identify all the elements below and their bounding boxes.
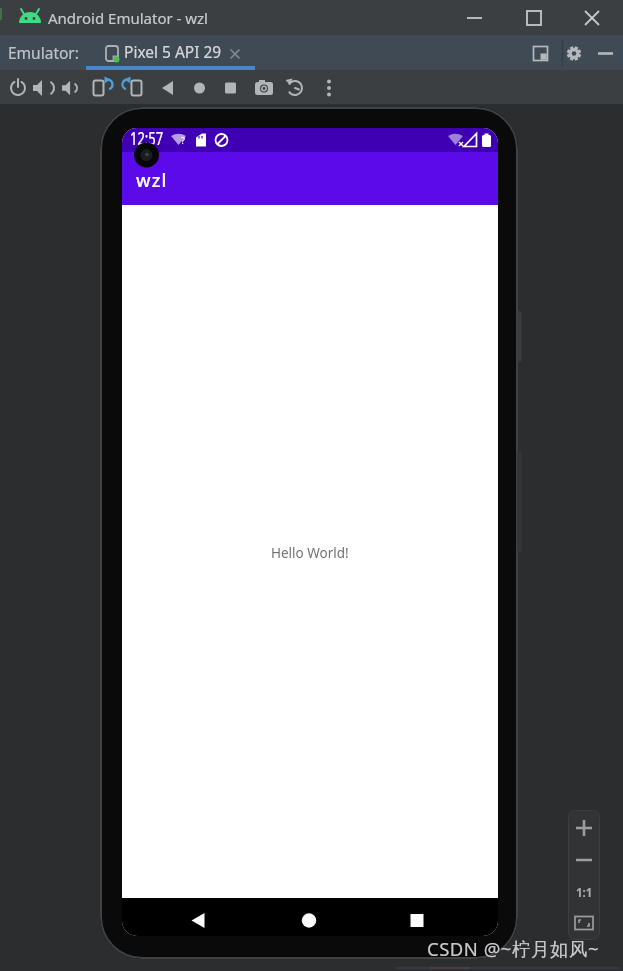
staticText: wzl	[136, 168, 168, 193]
button[interactable]	[594, 39, 620, 67]
button[interactable]: CSDN @~柠月如风~	[427, 936, 617, 960]
button[interactable]	[298, 74, 324, 100]
button[interactable]: Android Emulator - wzl	[48, 0, 298, 35]
button[interactable]: Pixel 5 API 29	[86, 35, 256, 70]
button[interactable]	[95, 74, 121, 100]
button[interactable]	[211, 74, 237, 100]
staticText: Android Emulator - wzl	[48, 8, 208, 28]
button[interactable]	[37, 74, 63, 100]
staticText: CSDN @~柠月如风~	[427, 936, 600, 960]
staticText: 1:1	[576, 885, 593, 901]
button[interactable]	[289, 904, 329, 934]
button[interactable]	[564, 39, 592, 67]
button[interactable]	[397, 904, 437, 934]
staticText: 12:57	[130, 128, 164, 150]
button[interactable]	[178, 904, 218, 934]
button[interactable]	[570, 848, 598, 872]
button[interactable]	[269, 74, 295, 100]
staticText: Emulator:	[8, 42, 79, 63]
button[interactable]	[570, 880, 598, 906]
button[interactable]	[124, 74, 150, 100]
staticText: Hello World!	[271, 544, 349, 562]
staticText: Pixel 5 API 29	[124, 41, 222, 62]
button[interactable]	[8, 74, 34, 100]
button[interactable]	[240, 74, 266, 100]
button[interactable]	[153, 74, 179, 100]
button[interactable]	[526, 39, 554, 67]
button[interactable]	[570, 910, 598, 936]
button[interactable]	[182, 74, 208, 100]
button[interactable]	[66, 74, 92, 100]
staticText: ?	[181, 134, 185, 146]
button[interactable]	[570, 814, 598, 842]
